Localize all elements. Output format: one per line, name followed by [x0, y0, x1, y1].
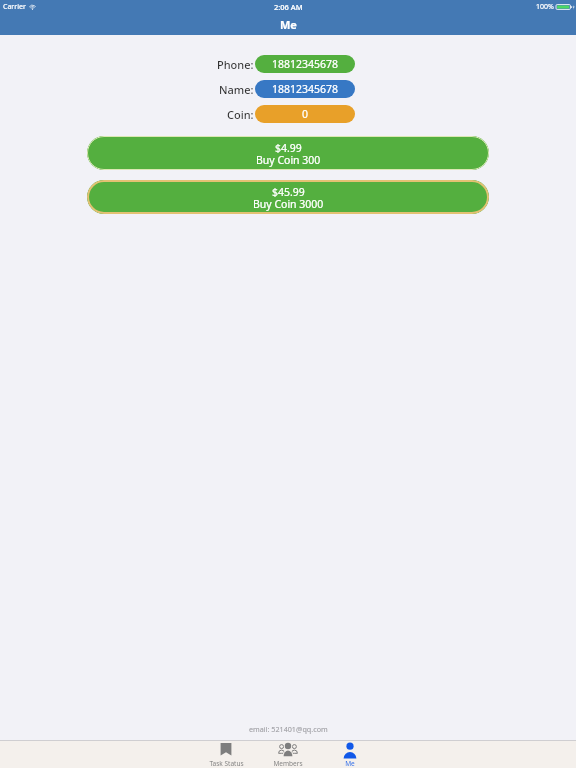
button[interactable]: Me	[319, 741, 381, 768]
staticText: Me	[280, 17, 297, 32]
staticText: Coin:	[227, 107, 254, 122]
staticText: 18812345678	[272, 57, 339, 71]
staticText: email: 521401@qq.com	[249, 724, 328, 734]
button[interactable]: Members	[257, 741, 319, 768]
staticText: Phone:	[217, 57, 254, 72]
staticText: Buy Coin 300	[256, 153, 321, 167]
staticText: 0	[302, 107, 309, 121]
staticText: Me	[345, 759, 355, 768]
button[interactable]: 18812345678	[255, 55, 355, 73]
staticText: Task Status	[209, 759, 244, 768]
staticText: Members	[273, 759, 303, 768]
button[interactable]: $4.99	[87, 136, 489, 170]
staticText: Carrier	[3, 2, 26, 12]
button[interactable]: $45.99	[87, 180, 489, 214]
staticText: 18812345678	[272, 82, 339, 96]
button[interactable]: Task Status	[195, 741, 257, 768]
staticText: $45.99	[272, 185, 305, 199]
button[interactable]: 0	[255, 105, 355, 123]
staticText: Buy Coin 3000	[253, 197, 324, 211]
button[interactable]: 18812345678	[255, 80, 355, 98]
staticText: Name:	[219, 82, 254, 97]
staticText: $4.99	[275, 141, 302, 155]
staticText: 2:06 AM	[274, 2, 303, 12]
staticText: 100%	[536, 2, 554, 12]
